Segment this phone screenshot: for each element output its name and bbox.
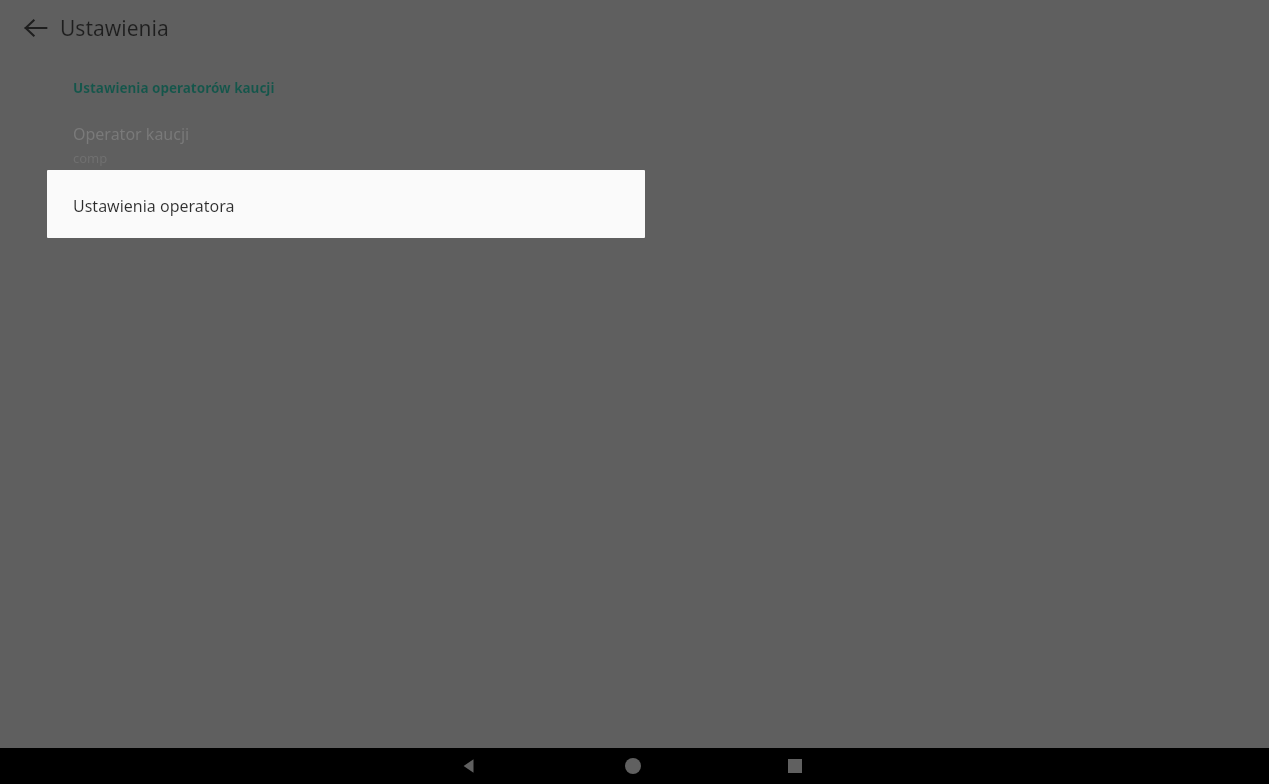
staticText: Operator kaucji <box>73 123 190 145</box>
button[interactable]: Ekran główny <box>609 748 657 784</box>
button[interactable]: Wstecz <box>12 4 60 52</box>
staticText: Ustawienia operatorów kaucji <box>73 79 275 97</box>
staticText: Ustawienia operatora <box>73 195 235 217</box>
staticText: Ustawienia <box>60 14 169 43</box>
button[interactable]: Operator kaucji <box>0 115 1269 177</box>
button[interactable]: Wstecz <box>446 748 494 784</box>
button[interactable]: Ustawienia operatora <box>47 170 645 238</box>
staticText: comp <box>73 149 108 167</box>
button[interactable]: Ostatnie aplikacje <box>771 748 819 784</box>
